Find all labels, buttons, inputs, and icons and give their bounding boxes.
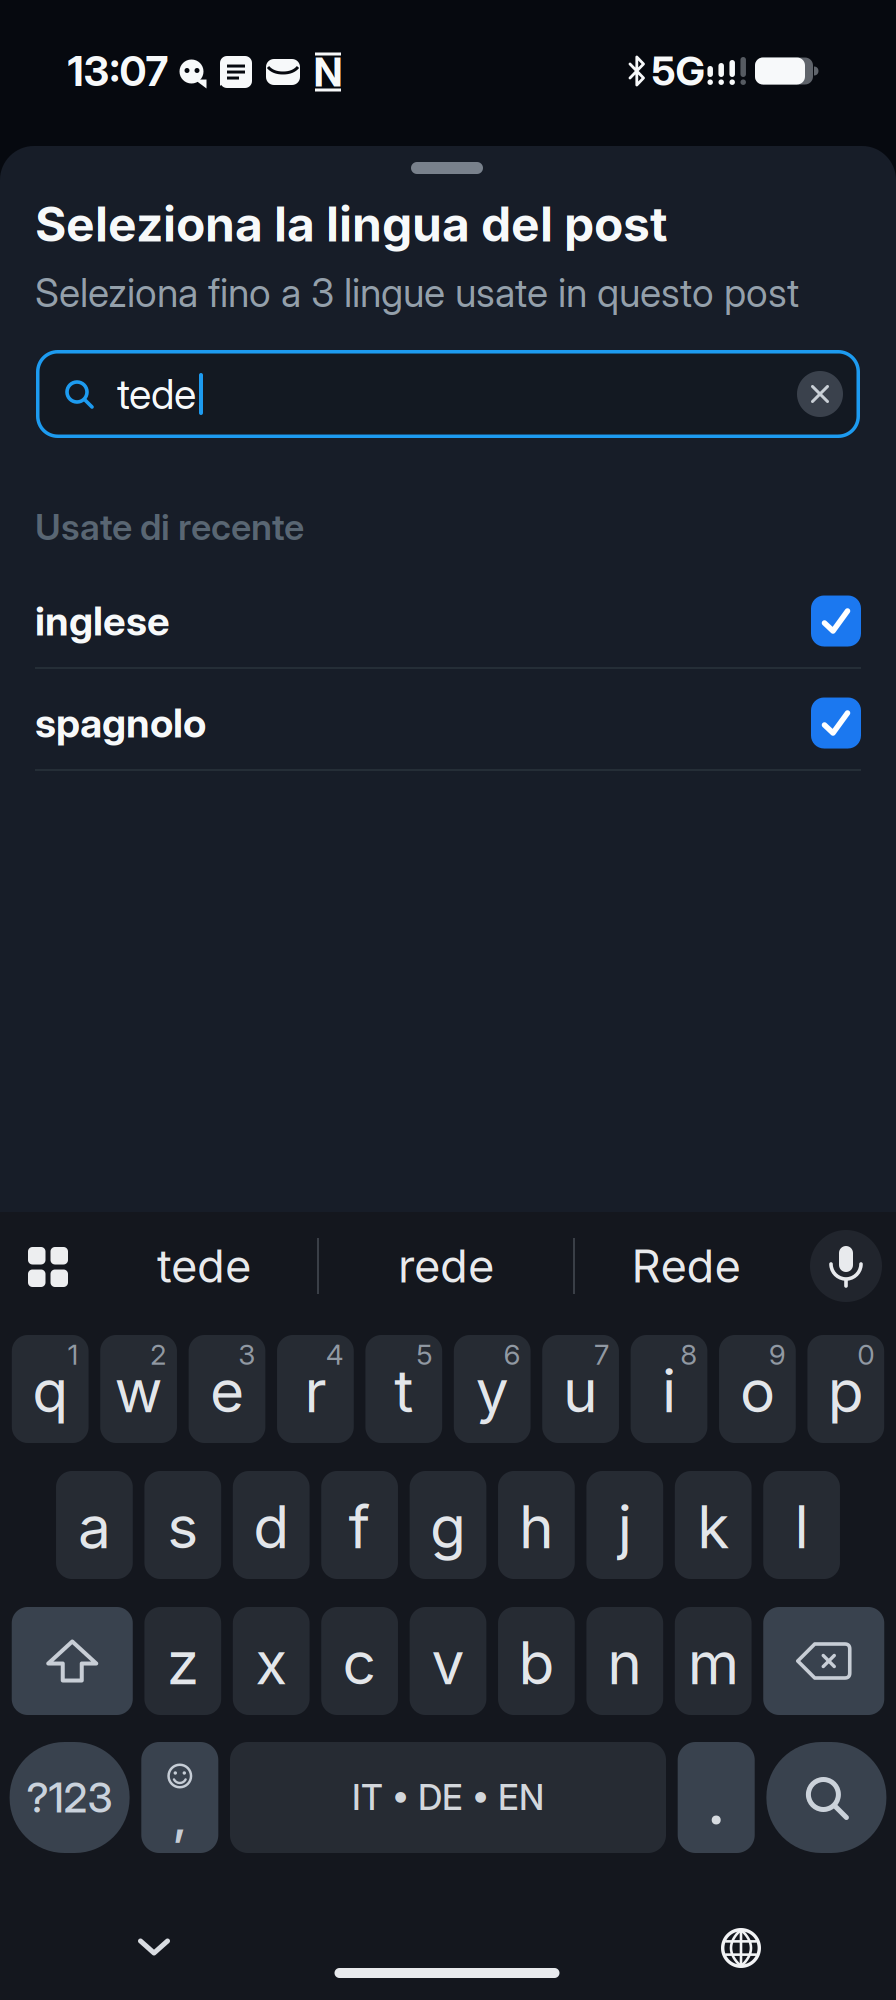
staticText: r: [304, 1356, 326, 1426]
button[interactable]: l: [763, 1471, 840, 1579]
staticText: Rede: [631, 1239, 740, 1293]
button[interactable]: Search: [766, 1742, 886, 1853]
staticText: 3: [238, 1338, 255, 1371]
staticText: 5: [416, 1338, 432, 1371]
staticText: l: [795, 1492, 809, 1562]
button[interactable]: u: [542, 1335, 619, 1443]
staticText: ,: [173, 1791, 187, 1845]
staticText: i: [662, 1356, 676, 1426]
button[interactable]: Period: [678, 1742, 755, 1853]
staticText: g: [430, 1492, 466, 1562]
staticText: ?123: [27, 1773, 113, 1822]
button[interactable]: s: [144, 1471, 221, 1579]
button[interactable]: p: [807, 1335, 884, 1443]
button[interactable]: Shift: [12, 1607, 133, 1715]
button[interactable]: inglese: [35, 571, 861, 671]
staticText: k: [697, 1492, 729, 1562]
button[interactable]: x: [233, 1607, 309, 1715]
button[interactable]: Space: [230, 1742, 666, 1853]
staticText: c: [343, 1628, 377, 1698]
button[interactable]: Emoji: [141, 1742, 218, 1853]
staticText: a: [78, 1492, 111, 1562]
staticText: 8: [680, 1338, 697, 1371]
staticText: n: [607, 1628, 642, 1698]
staticText: v: [431, 1628, 464, 1698]
staticText: u: [563, 1356, 598, 1426]
button[interactable]: Keyboard menu: [28, 1247, 68, 1287]
button[interactable]: v: [410, 1607, 486, 1715]
button[interactable]: e: [189, 1335, 265, 1443]
button[interactable]: tede: [157, 1239, 251, 1293]
button[interactable]: Dismiss keyboard: [140, 1941, 167, 1953]
button[interactable]: c: [321, 1607, 398, 1715]
staticText: d: [253, 1492, 289, 1562]
staticText: 13:07: [67, 47, 168, 95]
button[interactable]: Next keyboard: [719, 1926, 763, 1970]
button[interactable]: y: [454, 1335, 530, 1443]
staticText: tede: [117, 370, 196, 418]
staticText: Seleziona la lingua del post: [35, 196, 668, 252]
staticText: b: [518, 1628, 554, 1698]
staticText: m: [688, 1628, 739, 1698]
staticText: N: [313, 48, 342, 96]
button[interactable]: Delete: [763, 1607, 884, 1715]
button[interactable]: o: [719, 1335, 796, 1443]
button[interactable]: f: [321, 1471, 398, 1579]
staticText: 7: [594, 1338, 609, 1371]
button[interactable]: Numbers and symbols: [10, 1742, 130, 1853]
staticText: y: [476, 1356, 509, 1426]
staticText: 1: [67, 1338, 78, 1371]
button[interactable]: r: [277, 1335, 354, 1443]
staticText: s: [167, 1492, 198, 1562]
staticText: inglese: [35, 597, 170, 645]
staticText: q: [32, 1356, 68, 1426]
staticText: 2: [150, 1338, 167, 1371]
button[interactable]: g: [410, 1471, 486, 1579]
button[interactable]: b: [498, 1607, 575, 1715]
button[interactable]: j: [586, 1471, 663, 1579]
staticText: t: [394, 1356, 413, 1426]
staticText: 0: [857, 1338, 874, 1371]
staticText: 4: [326, 1338, 344, 1371]
staticText: e: [210, 1356, 244, 1426]
button[interactable]: h: [498, 1471, 575, 1579]
staticText: x: [255, 1628, 287, 1698]
staticText: 9: [769, 1338, 786, 1371]
staticText: IT • DE • EN: [352, 1777, 544, 1818]
button[interactable]: t: [365, 1335, 442, 1443]
button[interactable]: k: [675, 1471, 751, 1579]
staticText: p: [828, 1356, 864, 1426]
staticText: 6: [503, 1338, 520, 1371]
button[interactable]: m: [675, 1607, 751, 1715]
button[interactable]: z: [144, 1607, 221, 1715]
staticText: z: [167, 1628, 199, 1698]
button[interactable]: Search languages: [36, 350, 860, 438]
button[interactable]: Rede: [631, 1239, 740, 1293]
staticText: o: [740, 1356, 775, 1426]
button[interactable]: Voice input: [810, 1230, 882, 1302]
staticText: j: [618, 1492, 632, 1562]
staticText: spagnolo: [35, 699, 206, 747]
staticText: rede: [398, 1239, 494, 1293]
staticText: f: [349, 1492, 371, 1562]
staticText: 5G: [651, 47, 704, 95]
staticText: tede: [157, 1239, 251, 1293]
button[interactable]: w: [100, 1335, 177, 1443]
button[interactable]: q: [12, 1335, 88, 1443]
staticText: w: [115, 1356, 163, 1426]
button[interactable]: d: [233, 1471, 309, 1579]
button[interactable]: a: [56, 1471, 133, 1579]
button[interactable]: n: [586, 1607, 663, 1715]
staticText: Usate di recente: [35, 506, 304, 548]
button[interactable]: spagnolo: [35, 673, 861, 773]
staticText: h: [519, 1492, 554, 1562]
button[interactable]: rede: [398, 1239, 494, 1293]
button[interactable]: i: [631, 1335, 707, 1443]
staticText: Seleziona fino a 3 lingue usate in quest…: [35, 270, 799, 316]
